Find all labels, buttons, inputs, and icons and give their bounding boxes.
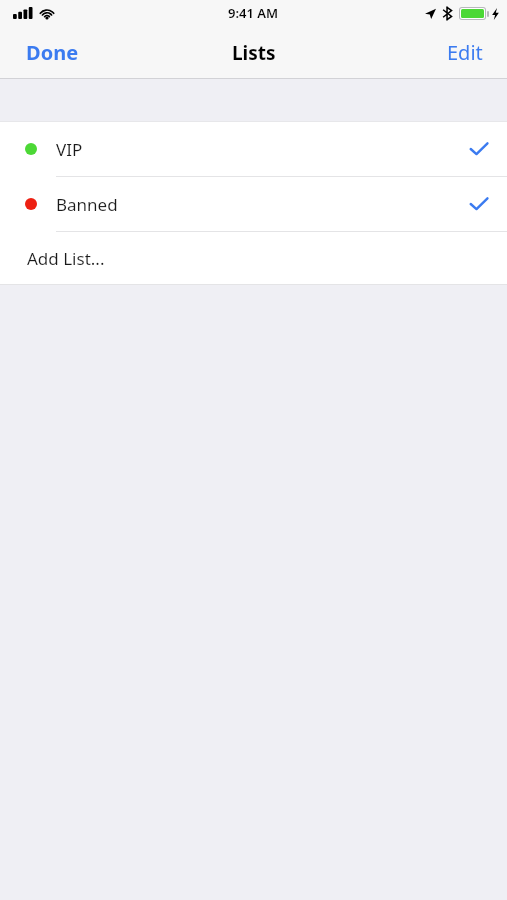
staticText: Edit <box>447 39 483 66</box>
staticText: Banned <box>56 193 118 216</box>
button[interactable]: Add List... <box>0 232 507 284</box>
button[interactable]: Edit <box>423 29 507 76</box>
staticText: Done <box>26 39 79 66</box>
button[interactable]: Done <box>0 29 105 76</box>
other: Selected <box>451 142 507 156</box>
staticText: 9:41 AM <box>228 4 279 22</box>
staticText: Add List... <box>27 247 105 270</box>
staticText: Lists <box>232 40 276 66</box>
other: Selected <box>451 197 507 211</box>
button[interactable]: Banned <box>0 177 507 231</box>
button[interactable]: VIP <box>0 122 507 176</box>
staticText: VIP <box>56 138 83 161</box>
